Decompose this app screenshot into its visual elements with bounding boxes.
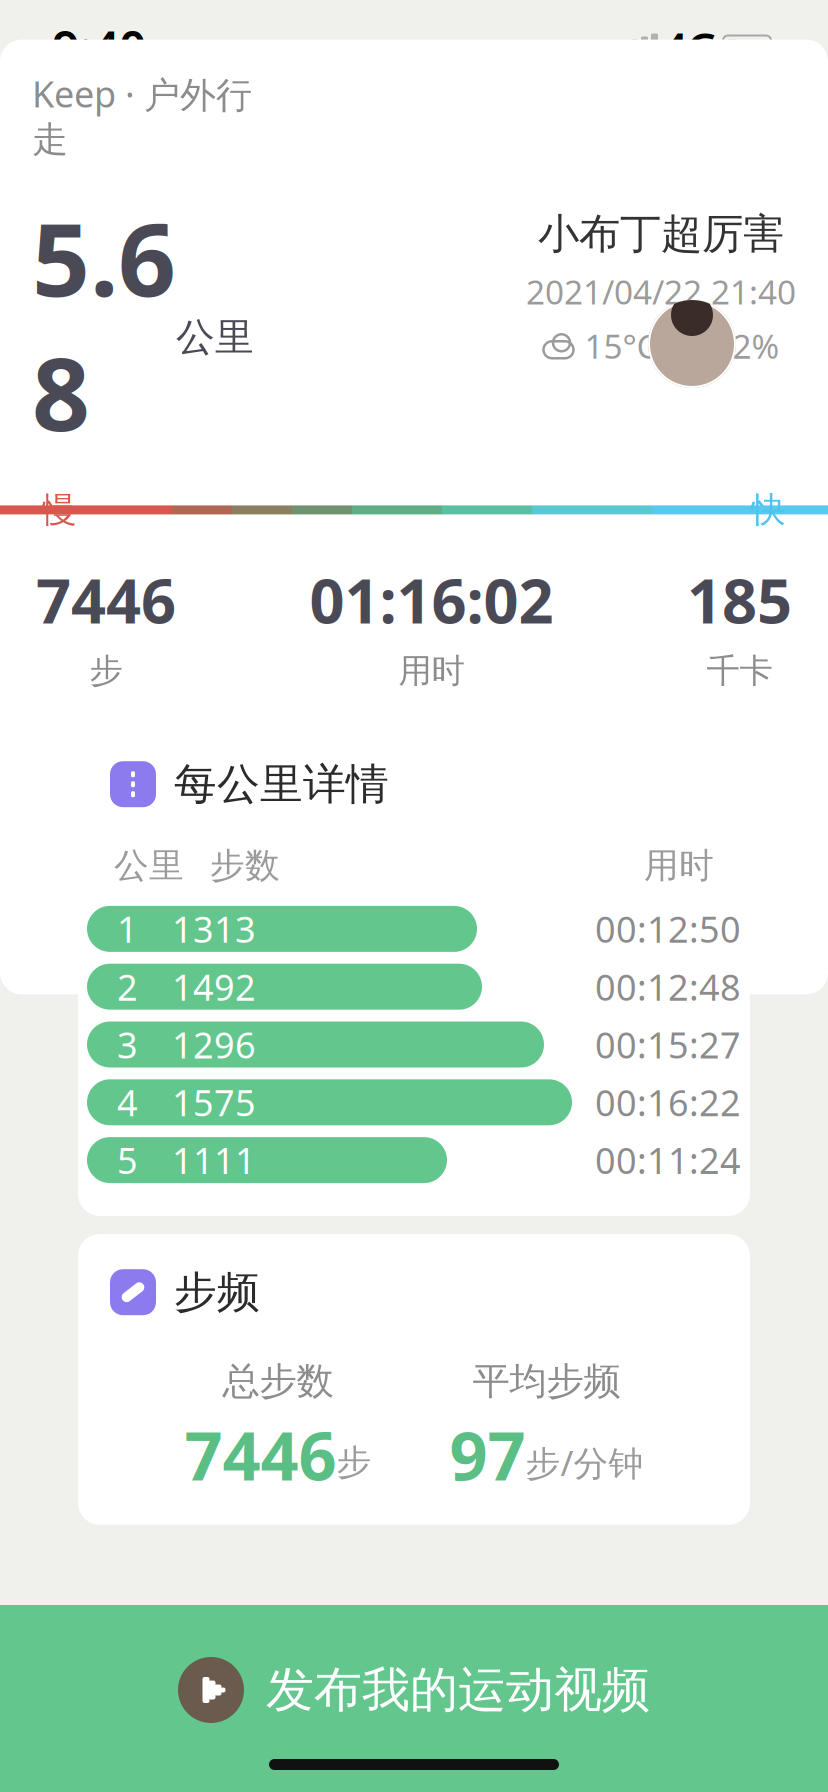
staticText: 发布我的运动视频 bbox=[266, 1660, 650, 1719]
staticText: 4 bbox=[117, 1078, 138, 1126]
staticText: 00:15:27 bbox=[595, 1021, 741, 1068]
button[interactable]: 发布我的运动视频 bbox=[0, 1605, 828, 1792]
staticText: 01:16:02 bbox=[309, 559, 553, 640]
staticText: 3 bbox=[117, 1021, 138, 1068]
staticText: 公里 bbox=[114, 844, 184, 887]
staticText: 185 bbox=[687, 559, 792, 640]
staticText: Keep · 户外行走 bbox=[32, 70, 252, 162]
staticText: 1296 bbox=[172, 1021, 256, 1068]
staticText: 公里 bbox=[176, 314, 254, 361]
staticText: 1111 bbox=[172, 1136, 256, 1184]
staticText: 快 bbox=[751, 489, 786, 531]
staticText: 2 bbox=[117, 963, 138, 1011]
staticText: 7446 bbox=[184, 1410, 336, 1499]
staticText: 1313 bbox=[172, 905, 256, 953]
staticText: 1575 bbox=[172, 1078, 256, 1126]
staticText: 用时 bbox=[398, 650, 464, 691]
staticText: 00:11:24 bbox=[595, 1136, 741, 1184]
staticText: 千卡 bbox=[706, 650, 772, 691]
staticText: 步数 bbox=[210, 844, 280, 887]
staticText: 5 bbox=[117, 1136, 138, 1184]
staticText: 用时 bbox=[644, 844, 714, 887]
staticText: 1 bbox=[117, 905, 138, 953]
staticText: 平均步频 bbox=[472, 1358, 620, 1404]
button[interactable]: Collapse bbox=[28, 102, 106, 180]
staticText: 步 bbox=[336, 1441, 371, 1484]
staticText: 5.68 bbox=[32, 190, 176, 459]
staticText: 00:12:50 bbox=[595, 905, 741, 953]
staticText: 00:12:48 bbox=[595, 963, 741, 1011]
staticText: 4G bbox=[663, 20, 718, 76]
staticText: 7446 bbox=[36, 559, 176, 640]
staticText: 总步数 bbox=[222, 1358, 333, 1404]
staticText: 9:40 bbox=[52, 16, 146, 80]
staticText: 92% bbox=[713, 324, 779, 368]
staticText: 2021/04/22 21:40 bbox=[526, 269, 796, 314]
staticText: 1492 bbox=[172, 963, 256, 1011]
staticText: 步/分钟 bbox=[525, 1439, 643, 1485]
staticText: 步频 bbox=[174, 1266, 260, 1318]
staticText: 每公里详情 bbox=[174, 758, 389, 810]
staticText: 小布丁超厉害 bbox=[538, 209, 784, 259]
staticText: 步 bbox=[89, 650, 122, 691]
staticText: 00:16:22 bbox=[595, 1078, 741, 1126]
staticText: 15°C bbox=[584, 324, 657, 368]
staticText: 慢 bbox=[42, 489, 77, 531]
staticText: 97 bbox=[449, 1410, 525, 1499]
